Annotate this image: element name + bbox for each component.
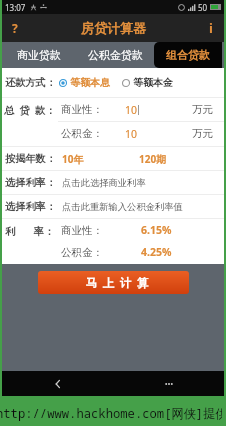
staticText: 120期: [139, 152, 167, 166]
button[interactable]: 等额本金: [122, 76, 173, 89]
button[interactable]: 按揭年数：: [2, 147, 224, 170]
staticText: 选择利率：: [5, 200, 56, 213]
staticText: 房贷计算器: [81, 20, 146, 36]
staticText: 10: [125, 103, 138, 117]
staticText: 组合贷款: [166, 48, 210, 62]
staticText: 公积金：: [61, 246, 103, 259]
staticText: 万元: [192, 103, 213, 116]
staticText: 10年: [62, 152, 84, 166]
staticText: 商业性：: [61, 224, 103, 237]
staticText: 按揭年数：: [5, 152, 56, 165]
staticText: 公积金：: [61, 127, 103, 140]
button[interactable]: 10: [125, 127, 138, 141]
staticText: 4.25%: [141, 245, 172, 259]
button[interactable]: 等额本息: [59, 76, 110, 89]
staticText: 商业性：: [61, 103, 103, 116]
button[interactable]: Info: [198, 14, 224, 42]
staticText: 10: [125, 127, 138, 141]
staticText: 选择利率：: [5, 176, 56, 189]
staticText: 50: [198, 2, 208, 13]
button[interactable]: Back: [2, 371, 113, 396]
button[interactable]: 选择利率：: [2, 195, 224, 218]
staticText: 还款方式：: [5, 76, 56, 89]
button[interactable]: 选择利率：: [2, 171, 224, 194]
staticText: 利 率：: [5, 224, 55, 238]
staticText: http://www.hackhome.com[网侠]提供: [0, 405, 222, 422]
staticText: 点击此选择商业利率: [62, 177, 146, 189]
button[interactable]: 商业贷款: [2, 42, 76, 68]
button[interactable]: 组合贷款: [154, 42, 222, 68]
staticText: i: [209, 19, 213, 37]
staticText: 13:07: [5, 2, 26, 13]
staticText: 总 贷 款：: [4, 103, 56, 117]
staticText: 等额本息: [70, 76, 110, 89]
staticText: 马上计算: [83, 276, 151, 290]
staticText: 商业贷款: [17, 48, 61, 62]
staticText: 等额本金: [133, 76, 173, 89]
button[interactable]: Menu: [113, 371, 224, 396]
button[interactable]: Help: [2, 14, 28, 42]
staticText: 万元: [192, 127, 213, 140]
staticText: 6.15%: [141, 223, 172, 237]
staticText: 公积金贷款: [88, 48, 143, 62]
staticText: 点击此重新输入公积金利率值: [62, 201, 183, 213]
button[interactable]: 公积金贷款: [76, 42, 154, 68]
button[interactable]: 马上计算: [38, 271, 189, 294]
button[interactable]: 10: [125, 103, 139, 117]
staticText: ?: [12, 20, 18, 36]
